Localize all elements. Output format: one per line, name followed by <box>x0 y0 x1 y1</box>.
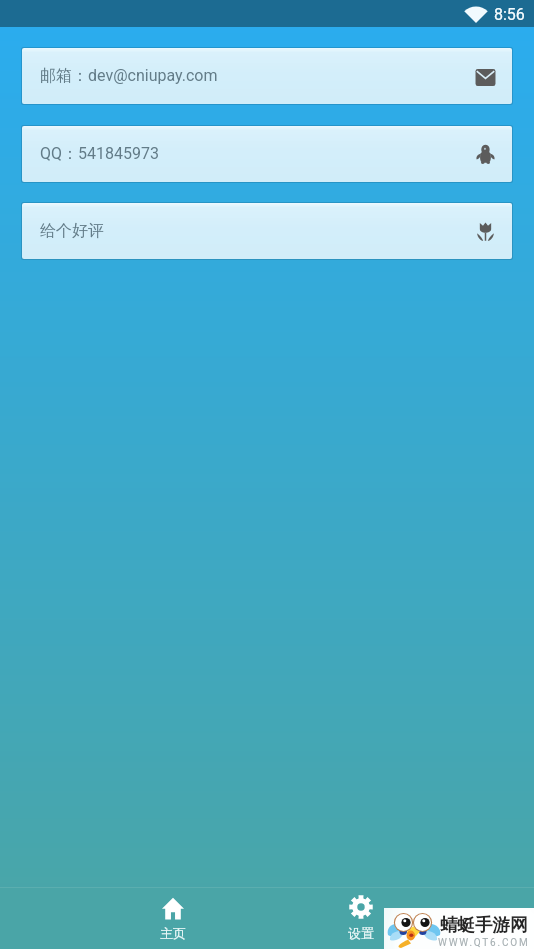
button[interactable]: Email <box>22 48 512 104</box>
button[interactable]: QQ <box>22 126 512 182</box>
staticText: QQ：541845973 <box>40 144 159 164</box>
staticText: 设置 <box>348 925 374 941</box>
staticText: 主页 <box>160 925 186 941</box>
staticText: 邮箱：dev@cniupay.com <box>40 66 218 86</box>
button[interactable]: 主页 <box>79 887 267 949</box>
staticText: WWW.QT6.COM <box>438 937 530 949</box>
button[interactable]: Rate <box>22 203 512 259</box>
staticText: 8:56 <box>494 5 525 24</box>
staticText: 给个好评 <box>40 221 104 241</box>
button[interactable]: 设置 <box>267 887 455 949</box>
staticText: 蜻蜓手游网 <box>440 914 528 936</box>
